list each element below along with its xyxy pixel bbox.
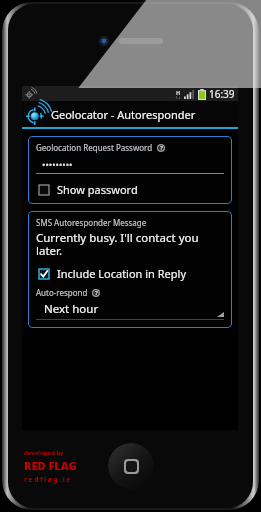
staticText: Show password [57, 182, 138, 197]
staticText: RED FLAG [24, 458, 77, 473]
staticText: 16:39 [209, 87, 235, 101]
staticText: developed by [24, 449, 64, 457]
staticText: Next hour [44, 301, 99, 317]
staticText: Geolocation Request Password [36, 142, 153, 153]
button[interactable]: ••••••••• [36, 158, 224, 174]
staticText: ? [160, 144, 163, 152]
staticText: ? [95, 289, 98, 297]
staticText: ↑↓ [175, 96, 181, 100]
button[interactable]: Include Location in Reply [36, 265, 191, 282]
staticText: Geolocator - Autoresponder [51, 107, 196, 122]
staticText: Auto-respond [36, 287, 88, 298]
staticText: ••••••••• [42, 158, 73, 170]
staticText: r e d f l a g . i e [24, 475, 71, 484]
staticText: SMS Autoresponder Message [36, 217, 147, 228]
staticText: H [176, 89, 181, 96]
staticText: Include Location in Reply [57, 266, 187, 281]
button[interactable]: Home [108, 443, 154, 489]
button[interactable]: Next hour [36, 301, 224, 320]
button[interactable]: Show password [36, 181, 142, 198]
button[interactable]: Geolocator - Autoresponder [22, 101, 238, 127]
button[interactable]: Currently busy. I'll contact you later. [36, 230, 224, 259]
